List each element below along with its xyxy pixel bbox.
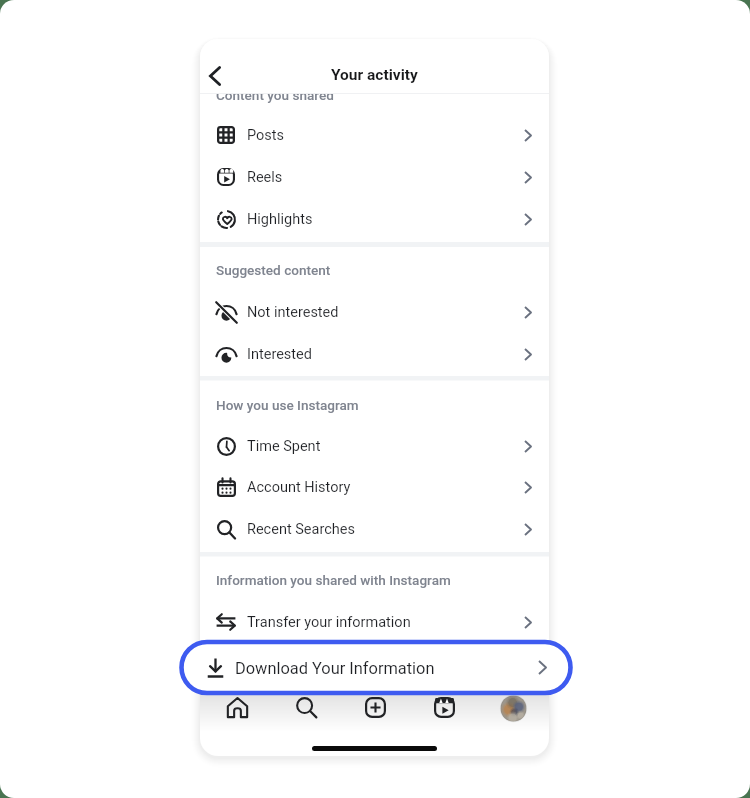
button[interactable]: Posts [200, 114, 549, 156]
staticText: Posts [247, 127, 285, 144]
staticText: Account History [247, 479, 351, 496]
button[interactable]: Profile [496, 691, 530, 725]
button[interactable]: Account History [200, 466, 549, 508]
staticText: Highlights [247, 211, 313, 228]
staticText: Content you shared [216, 87, 334, 103]
button[interactable]: Create [358, 690, 392, 724]
staticText: Reels [247, 169, 283, 186]
button[interactable]: Recent Searches [200, 508, 549, 550]
button[interactable]: Transfer your information [200, 601, 549, 643]
staticText: Not interested [247, 304, 339, 321]
staticText: Your activity [331, 66, 418, 84]
button[interactable]: Download Your Information [200, 647, 549, 689]
button[interactable]: Highlights [200, 198, 549, 240]
button[interactable]: Search [289, 690, 323, 724]
staticText: Information you shared with Instagram [216, 572, 451, 588]
staticText: Transfer your information [247, 614, 411, 631]
button[interactable]: Not interested [200, 291, 549, 333]
staticText: Suggested content [216, 262, 331, 278]
staticText: Time Spent [247, 438, 321, 455]
button[interactable]: Back [200, 59, 232, 93]
staticText: Interested [247, 346, 312, 363]
button[interactable]: Reels [200, 156, 549, 198]
button[interactable]: Reels [427, 690, 461, 724]
button[interactable]: Interested [200, 333, 549, 375]
staticText: Download Your Information [235, 659, 435, 678]
staticText: Recent Searches [247, 521, 355, 538]
staticText: How you use Instagram [216, 397, 359, 413]
button[interactable]: Home [220, 690, 254, 724]
button[interactable]: Time Spent [200, 425, 549, 467]
